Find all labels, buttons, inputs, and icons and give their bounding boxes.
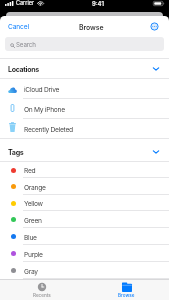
button[interactable]: Purple: [0, 245, 169, 262]
staticText: Gray: [24, 268, 38, 276]
button[interactable]: Tags: [0, 142, 169, 161]
button[interactable]: On My iPhone: [0, 99, 169, 118]
staticText: Carrier: [16, 0, 35, 7]
staticText: Recents: [33, 293, 51, 299]
button[interactable]: Gray: [0, 262, 169, 279]
button[interactable]: Recents: [0, 280, 84, 300]
button[interactable]: iCloud Drive: [0, 79, 169, 98]
button[interactable]: Browse: [84, 280, 169, 300]
staticText: Yellow: [24, 200, 43, 208]
staticText: Red: [24, 167, 36, 175]
button[interactable]: Recently Deleted: [0, 119, 169, 138]
button[interactable]: Blue: [0, 228, 169, 245]
button[interactable]: Green: [0, 211, 169, 228]
button[interactable]: Cancel: [0, 19, 33, 35]
staticText: Cancel: [8, 23, 29, 31]
button[interactable]: Locations: [0, 59, 169, 78]
button[interactable]: Red: [0, 162, 169, 178]
staticText: Green: [24, 217, 42, 225]
staticText: iCloud Drive: [24, 86, 60, 94]
button[interactable]: More: [150, 22, 159, 31]
staticText: Locations: [8, 65, 39, 74]
button[interactable]: Search: [5, 37, 164, 51]
staticText: Recently Deleted: [24, 126, 73, 134]
staticText: Search: [16, 41, 36, 49]
staticText: Orange: [24, 184, 46, 192]
staticText: Purple: [24, 251, 43, 259]
staticText: Tags: [8, 148, 24, 157]
button[interactable]: Orange: [0, 178, 169, 195]
staticText: On My iPhone: [24, 106, 65, 114]
staticText: Blue: [24, 234, 37, 242]
button[interactable]: Yellow: [0, 195, 169, 211]
staticText: Browse: [79, 23, 104, 31]
staticText: 9:41: [92, 0, 104, 7]
staticText: Browse: [118, 293, 135, 299]
